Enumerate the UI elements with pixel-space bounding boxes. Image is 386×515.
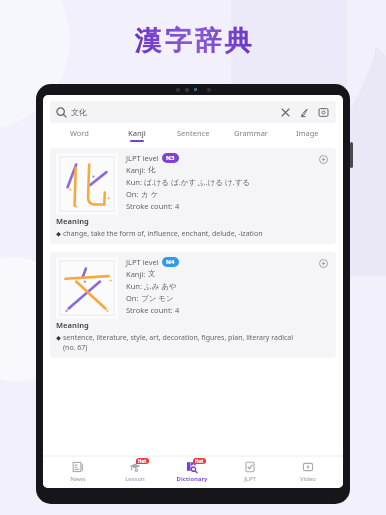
staticText: N3 [166, 154, 175, 162]
staticText: 漢字辞典 [133, 24, 253, 58]
staticText: change, take the form of, influence, enc… [63, 229, 263, 239]
button[interactable]: JLPT [221, 456, 279, 488]
staticText: カ ケ [141, 189, 159, 199]
button[interactable]: Camera search [316, 105, 330, 119]
button[interactable]: Grammar [222, 128, 279, 145]
staticText: ブン モン [141, 293, 174, 303]
staticText: JLPT [244, 475, 256, 483]
button[interactable]: JLPT level [50, 252, 336, 358]
staticText: Dictionary [176, 475, 208, 483]
staticText: 文 [148, 269, 156, 278]
staticText: Kun: [126, 281, 144, 291]
staticText: Image [296, 128, 319, 138]
staticText: Kanji: [126, 165, 148, 175]
staticText: On: [126, 293, 141, 303]
button[interactable]: Hot [106, 456, 163, 488]
staticText: Stroke count: [126, 305, 175, 315]
staticText: 文化 [71, 107, 87, 117]
button[interactable]: JLPT level [50, 148, 336, 244]
button[interactable]: News [49, 456, 106, 488]
staticText: Word [70, 128, 89, 138]
button[interactable]: Kanji [108, 128, 165, 145]
staticText: ふみ あや [144, 281, 177, 291]
button[interactable]: 文化 [50, 101, 336, 123]
staticText: (no. 67) [63, 343, 88, 353]
staticText: Kanji: [126, 269, 148, 279]
staticText: Grammar [234, 128, 268, 138]
staticText: Kanji [128, 128, 146, 138]
button[interactable]: Add to list [317, 257, 330, 270]
button[interactable]: Clear [278, 105, 292, 119]
button[interactable]: Video [279, 456, 337, 488]
staticText: sentence, literature, style, art, decora… [63, 333, 294, 343]
staticText: Meaning [56, 216, 89, 226]
staticText: 4 [175, 305, 180, 315]
staticText: Meaning [56, 320, 89, 330]
staticText: Video [300, 475, 316, 483]
button[interactable]: Add to list [317, 153, 330, 166]
staticText: Lesson [125, 475, 145, 483]
button[interactable]: Image [279, 128, 336, 145]
staticText: News [70, 475, 86, 483]
staticText: N4 [166, 258, 175, 266]
button[interactable]: Hot [163, 456, 221, 488]
staticText: Sentence [177, 128, 210, 138]
staticText: ◆ [56, 333, 63, 342]
staticText: ◆ [56, 229, 63, 238]
button[interactable]: Word [50, 128, 108, 145]
staticText: Kun: [126, 177, 144, 187]
staticText: Stroke count: [126, 201, 175, 211]
staticText: JLPT level [126, 257, 159, 267]
staticText: Hot [195, 458, 204, 464]
staticText: 化 [148, 165, 156, 174]
staticText: JLPT level [126, 153, 159, 163]
staticText: ば.ける ば.かす ふ.ける け.する [144, 177, 250, 187]
staticText: On: [126, 189, 141, 199]
staticText: Hot [138, 458, 147, 464]
button[interactable]: Draw kanji [297, 105, 311, 119]
staticText: 4 [175, 201, 180, 211]
button[interactable]: Sentence [165, 128, 222, 145]
